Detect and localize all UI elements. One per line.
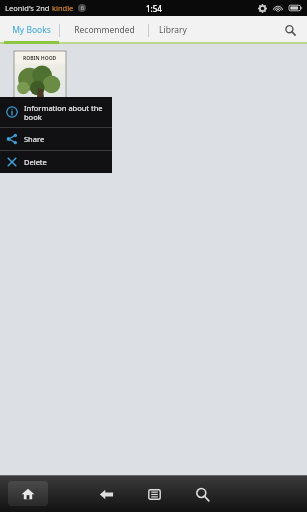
staticText: Library [159, 24, 187, 36]
button[interactable]: Information about the book [0, 97, 112, 127]
button[interactable]: ROBIN HOOD [14, 51, 66, 125]
button[interactable]: Search [187, 479, 217, 509]
button[interactable]: Menu [139, 479, 169, 509]
staticText: Share [24, 134, 45, 144]
other: Settings [258, 4, 267, 13]
button[interactable]: Library [149, 16, 197, 44]
other: Battery [289, 4, 302, 12]
staticText: kindle [52, 3, 74, 13]
staticText: 6 [81, 5, 84, 12]
staticText: ROBIN HOOD [23, 55, 57, 62]
staticText: Leonid's 2nd [5, 3, 52, 13]
staticText: Delete [24, 157, 47, 167]
button[interactable]: My Books [4, 16, 59, 44]
staticText: Recommended [74, 24, 135, 36]
other: Wi-Fi [273, 3, 283, 13]
button[interactable]: Search [273, 16, 307, 44]
button[interactable]: Back [91, 479, 121, 509]
button[interactable]: Share [0, 128, 112, 150]
staticText: My Books [12, 24, 51, 36]
button[interactable]: Delete [0, 151, 112, 173]
button[interactable]: Recommended [60, 16, 148, 44]
staticText: Information about the book [24, 103, 103, 122]
staticText: 1:54 [146, 3, 162, 14]
button[interactable]: Home [8, 481, 48, 506]
